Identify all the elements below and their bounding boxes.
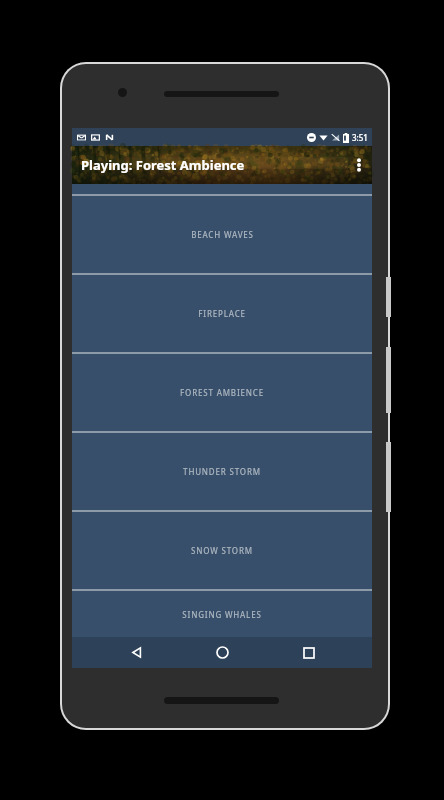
staticText: THUNDER STORM bbox=[183, 466, 261, 477]
button[interactable]: BEACH WAVES bbox=[72, 196, 372, 273]
button[interactable]: More options bbox=[346, 146, 372, 184]
staticText: Playing: Forest Ambience bbox=[81, 156, 245, 174]
staticText: SINGING WHALES bbox=[182, 609, 262, 620]
button[interactable]: FIREPLACE bbox=[72, 275, 372, 352]
button[interactable]: Home bbox=[199, 637, 245, 668]
staticText: FIREPLACE bbox=[198, 308, 246, 319]
button[interactable]: SNOW STORM bbox=[72, 512, 372, 589]
button[interactable]: Recent apps bbox=[286, 637, 332, 668]
button[interactable]: FOREST AMBIENCE bbox=[72, 354, 372, 431]
staticText: SNOW STORM bbox=[191, 545, 253, 556]
staticText: FOREST AMBIENCE bbox=[180, 387, 264, 398]
staticText: 3:51 bbox=[352, 132, 368, 143]
button[interactable]: Back bbox=[113, 637, 159, 668]
staticText: BEACH WAVES bbox=[191, 229, 254, 240]
button[interactable]: THUNDER STORM bbox=[72, 433, 372, 510]
button[interactable]: SINGING WHALES bbox=[72, 591, 372, 637]
